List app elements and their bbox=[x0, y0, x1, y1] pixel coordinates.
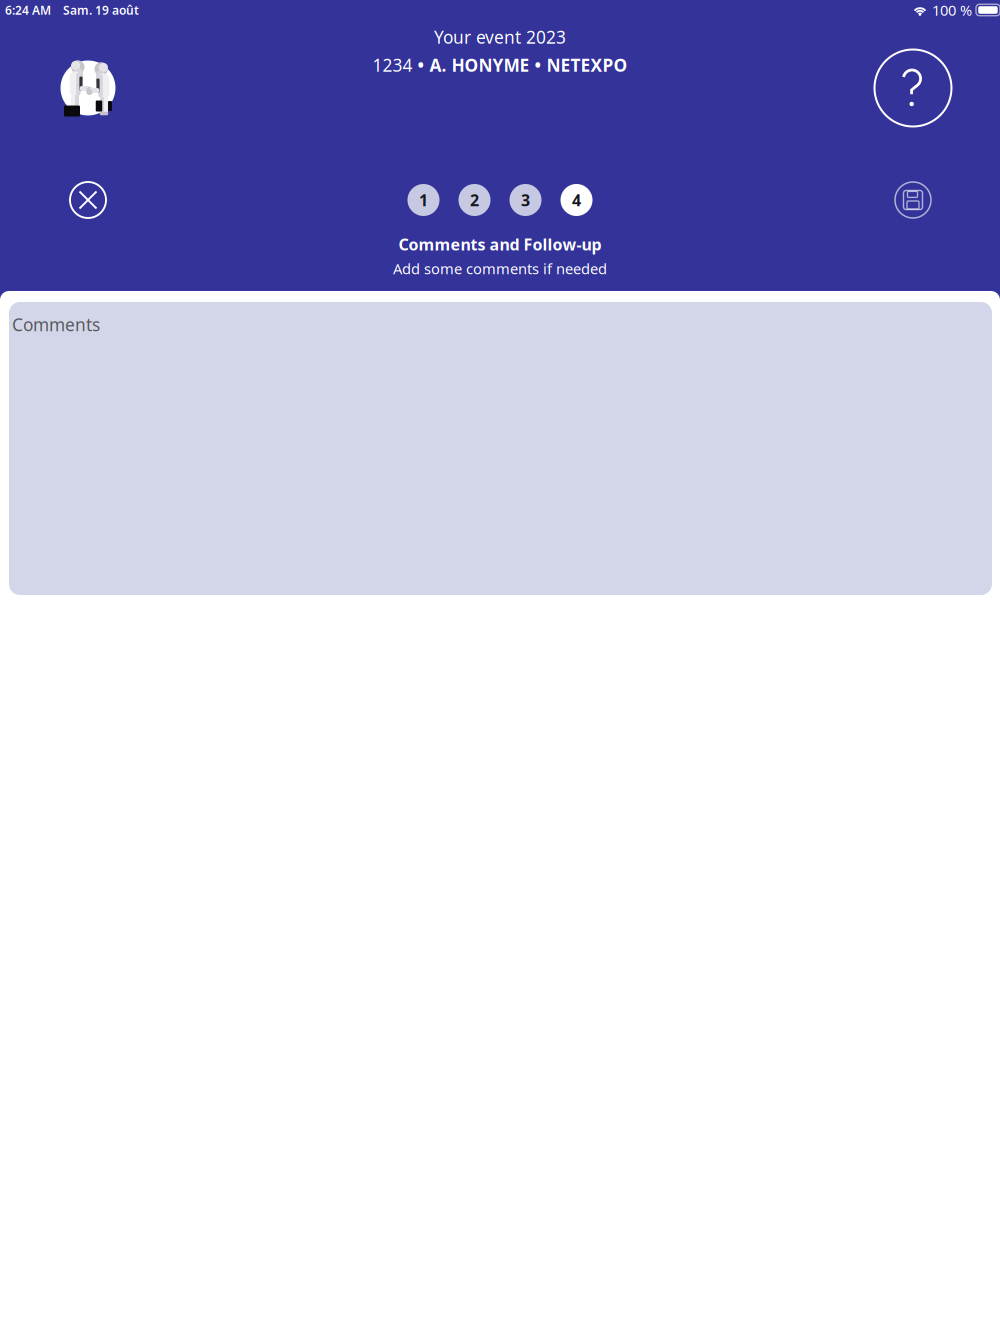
staticText: Add some comments if needed bbox=[393, 259, 607, 278]
button[interactable]: Help bbox=[874, 49, 952, 127]
staticText: 1234 • A. HONYME • NETEXPO bbox=[372, 53, 627, 76]
staticText: 2 bbox=[470, 189, 479, 211]
staticText: 3 bbox=[521, 189, 530, 211]
button[interactable]: Comments bbox=[9, 302, 992, 595]
button[interactable]: Save bbox=[895, 182, 931, 218]
staticText: 100 % bbox=[932, 0, 972, 20]
staticText: 1 bbox=[419, 189, 428, 211]
button[interactable]: 1 bbox=[407, 184, 439, 216]
staticText: Your event 2023 bbox=[434, 25, 566, 48]
staticText: Comments and Follow-up bbox=[398, 234, 601, 255]
staticText: Sam. 19 août bbox=[63, 2, 139, 18]
staticText: Comments bbox=[12, 313, 100, 336]
button[interactable]: 4 bbox=[560, 184, 592, 216]
button[interactable]: 2 bbox=[458, 184, 490, 216]
button[interactable]: 3 bbox=[509, 184, 541, 216]
staticText: 4 bbox=[572, 189, 581, 211]
staticText: 6:24 AM bbox=[5, 2, 51, 18]
button[interactable]: Event logo bbox=[55, 55, 121, 121]
button[interactable]: Close bbox=[70, 182, 106, 218]
